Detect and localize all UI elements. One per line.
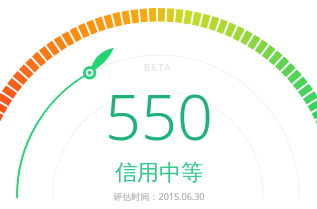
button[interactable]: Zhima credit score gauge, 550, 信用中等 [0,0,317,209]
staticText: 信用中等 [115,159,203,187]
staticText: BETA [144,61,173,73]
staticText: 550 [105,73,213,159]
staticText: 600 [110,33,128,49]
staticText: 评估时间：2015.06.30 [113,190,205,202]
